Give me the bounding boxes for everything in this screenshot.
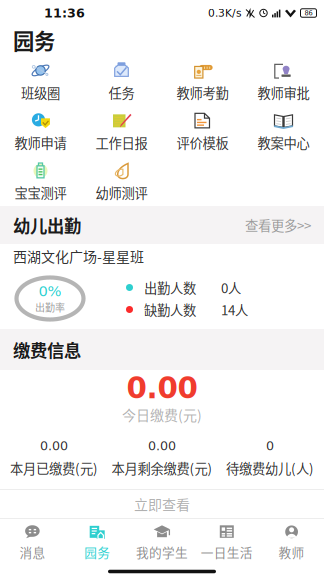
staticText: 本月已缴费(元) (10, 458, 98, 477)
staticText: 我的学生 (136, 543, 188, 561)
staticText: 立即查看 (134, 494, 190, 514)
staticText: 出勤率 (35, 300, 65, 314)
staticText: 待缴费幼儿(人) (226, 458, 314, 477)
button[interactable]: 教师考勤 (162, 56, 243, 106)
staticText: 0.3K/s (208, 7, 242, 19)
staticText: 11:36 (44, 6, 85, 20)
button[interactable]: 教师申请 (0, 106, 81, 156)
button[interactable]: 我的学生 (130, 519, 194, 567)
button[interactable]: 一日生活 (194, 519, 259, 567)
staticText: 本月剩余缴费(元) (111, 458, 212, 477)
staticText: 查看更多>> (245, 215, 311, 235)
staticText: 幼儿出勤 (13, 212, 81, 238)
staticText: 评价模板 (176, 133, 228, 152)
button[interactable]: 立即查看 (0, 490, 324, 518)
button[interactable]: 宝宝测评 (0, 156, 81, 206)
staticText: 0 (266, 438, 274, 453)
button[interactable]: 消息 (0, 519, 65, 567)
button[interactable]: 幼师测评 (81, 156, 162, 206)
staticText: 86 (304, 9, 312, 17)
button[interactable]: 任务 (81, 56, 162, 106)
staticText: 14人 (221, 300, 248, 319)
staticText: 0.00 (148, 438, 176, 453)
button[interactable]: 教师 (259, 519, 324, 567)
staticText: 园务 (84, 543, 110, 561)
staticText: 教师申请 (14, 133, 66, 152)
button[interactable]: 查看更多>> (245, 215, 311, 235)
staticText: 出勤人数 (144, 278, 196, 297)
staticText: 0人 (221, 278, 241, 297)
button[interactable]: 评价模板 (162, 106, 243, 156)
staticText: 教师审批 (257, 83, 309, 102)
staticText: 宝宝测评 (14, 183, 66, 202)
staticText: 一日生活 (201, 543, 253, 561)
staticText: 缴费信息 (13, 337, 81, 362)
button[interactable]: 班级圈 (0, 56, 81, 106)
staticText: 0.00 (40, 438, 68, 453)
staticText: 班级圈 (21, 83, 60, 102)
staticText: 教师 (279, 543, 305, 561)
staticText: 任务 (108, 83, 134, 102)
staticText: 教案中心 (257, 133, 309, 152)
button[interactable]: 园务 (65, 519, 130, 567)
staticText: 今日缴费(元) (122, 404, 202, 425)
staticText: 教师考勤 (176, 83, 228, 102)
staticText: 缺勤人数 (144, 300, 196, 319)
button[interactable]: 教师审批 (243, 56, 324, 106)
staticText: 0% (38, 283, 61, 300)
staticText: 西湖文化广场-星星班 (13, 246, 144, 266)
staticText: 消息 (19, 543, 45, 561)
staticText: 幼师测评 (95, 183, 147, 202)
staticText: 0.00 (126, 371, 197, 405)
button[interactable]: 工作日报 (81, 106, 162, 156)
staticText: 工作日报 (95, 133, 147, 152)
button[interactable]: 教案中心 (243, 106, 324, 156)
staticText: 园务 (13, 25, 55, 55)
